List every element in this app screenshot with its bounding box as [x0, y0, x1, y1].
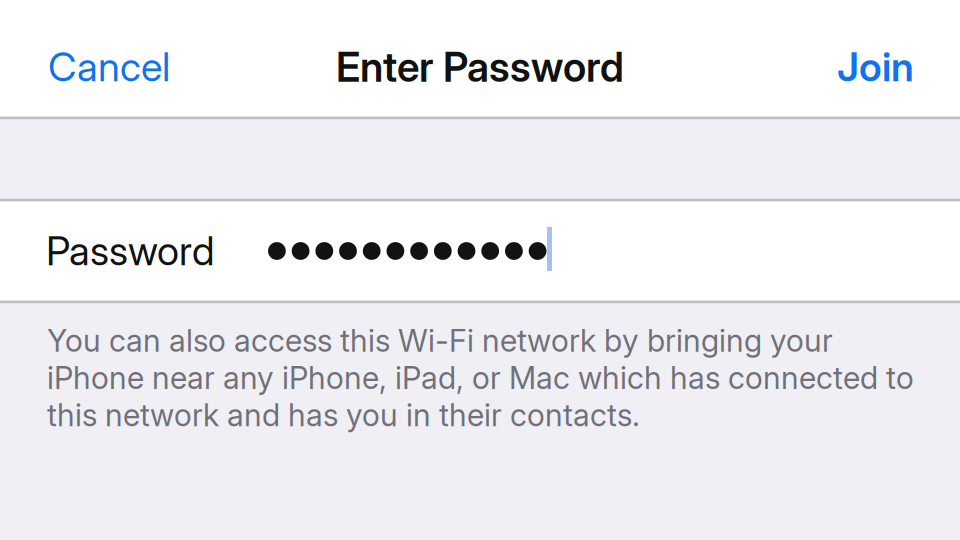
- staticText: Enter Password: [336, 43, 624, 91]
- staticText: Password: [46, 227, 215, 275]
- button[interactable]: Password: [0, 199, 960, 303]
- button[interactable]: Join: [823, 23, 928, 111]
- staticText: Cancel: [48, 43, 170, 91]
- staticText: Join: [837, 43, 914, 91]
- button[interactable]: Cancel: [32, 23, 184, 111]
- staticText: You can also access this Wi-Fi network b…: [47, 322, 914, 434]
